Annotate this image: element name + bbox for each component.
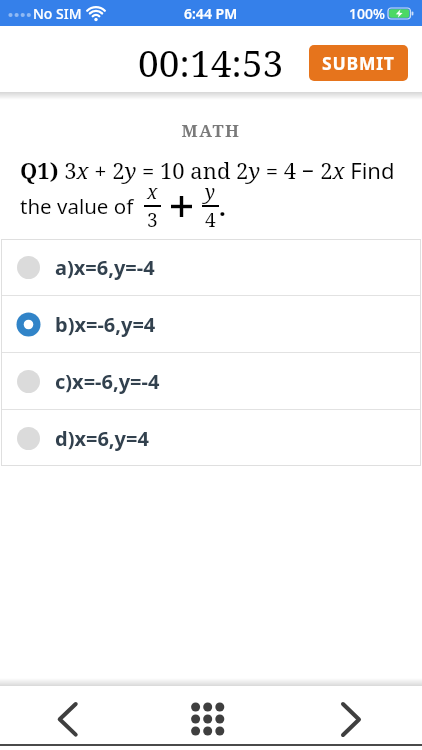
staticText: 3 — [147, 207, 158, 233]
staticText: SUBMIT — [322, 51, 395, 75]
staticText: 6:44 PM — [184, 4, 238, 23]
staticText: . — [219, 190, 226, 223]
staticText: d)x=6,y=4 — [55, 425, 149, 452]
button[interactable]: d)x=6,y=4 — [1, 410, 421, 466]
staticText: 4 — [205, 207, 216, 233]
staticText: No SIM — [33, 4, 82, 23]
staticText: a)x=6,y=-4 — [55, 254, 155, 281]
button[interactable] — [336, 694, 368, 738]
button[interactable]: c)x=-6,y=-4 — [1, 353, 421, 409]
staticText: MATH — [0, 119, 422, 142]
staticText: y — [205, 179, 216, 205]
staticText: 100% — [349, 4, 385, 23]
button[interactable]: b)x=-6,y=4 — [1, 296, 421, 352]
button[interactable]: SUBMIT — [309, 45, 408, 81]
button[interactable]: a)x=6,y=-4 — [1, 239, 421, 295]
button[interactable] — [188, 700, 228, 740]
staticText: the value of — [20, 192, 144, 220]
staticText: 00:14:53 — [138, 37, 284, 87]
staticText: Q1) 3x + 2y = 10 and 2y = 4 − 2x Find — [20, 155, 395, 185]
staticText: b)x=-6,y=4 — [55, 311, 156, 338]
button[interactable] — [52, 694, 84, 738]
staticText: c)x=-6,y=-4 — [55, 368, 160, 395]
staticText: x — [147, 179, 158, 205]
